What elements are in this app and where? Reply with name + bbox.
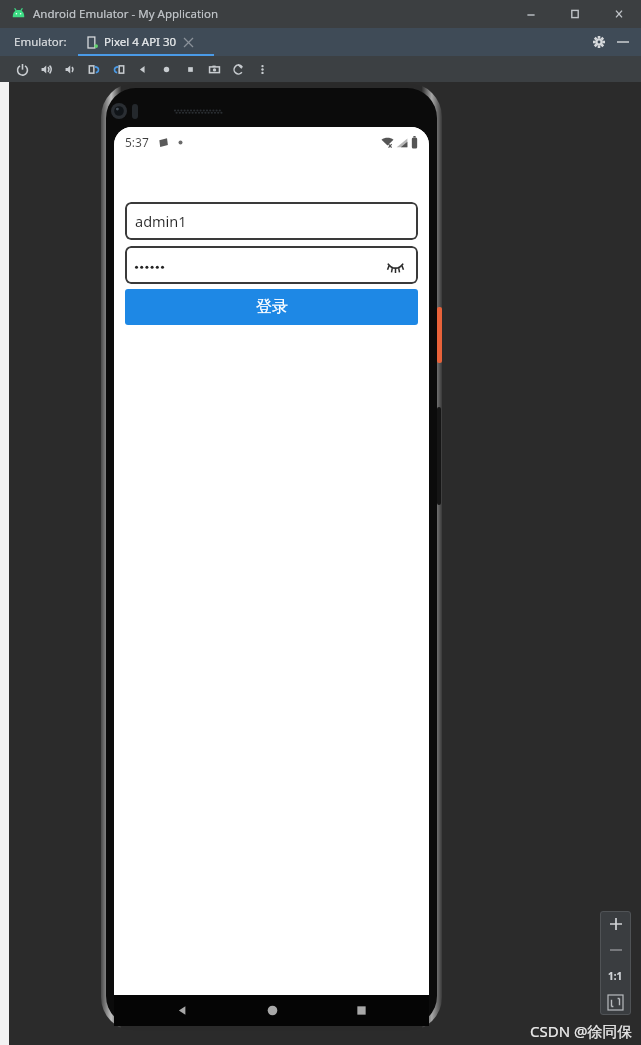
staticText: Pixel 4 API 30 [104,34,177,50]
button[interactable]: 登录 [125,289,418,325]
button[interactable]: Zoom in [600,911,631,937]
button[interactable]: Pixel 4 API 30 [88,28,193,56]
staticText: admin1 [135,211,187,231]
button[interactable]: Collapse [611,30,635,54]
button[interactable]: Power button [437,307,442,363]
staticText: Emulator: [14,34,67,50]
button[interactable]: admin1 [125,202,418,240]
staticText: 5:37 [125,134,149,150]
staticText: Android Emulator - My Application [33,6,219,22]
button[interactable]: Volume button [437,407,441,505]
button[interactable]: Maximize [553,0,597,28]
button[interactable]: History [226,57,250,81]
button[interactable]: Recent apps [339,995,383,1026]
button[interactable]: Zoom out [600,937,631,963]
button[interactable]: Back [160,995,204,1026]
button[interactable]: Toggle password visibility [382,252,408,278]
staticText: 1:1 [608,969,623,983]
button[interactable]: Back [130,57,154,81]
button[interactable]: Home [154,57,178,81]
button[interactable]: Rotate right [106,57,130,81]
button[interactable]: Volume up [34,57,58,81]
button[interactable]: Overview [178,57,202,81]
button[interactable]: 1:1 [600,963,631,989]
button[interactable]: Minimize [509,0,553,28]
button[interactable]: Power [10,57,34,81]
button[interactable]: Rotate left [82,57,106,81]
button[interactable]: Settings [587,30,611,54]
button[interactable]: Home [250,995,294,1026]
button[interactable]: Toggle password visibility [125,246,418,284]
button[interactable]: Volume down [58,57,82,81]
button[interactable]: Fit to screen [600,989,631,1015]
button[interactable]: Close [597,0,641,28]
staticText: 登录 [256,297,288,317]
button[interactable]: More [250,57,274,81]
button[interactable]: Screenshot [202,57,226,81]
staticText: CSDN @徐同保 [530,1021,633,1041]
